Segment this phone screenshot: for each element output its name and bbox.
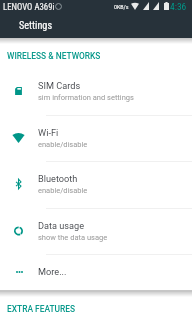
staticText: show the data usage bbox=[38, 233, 108, 242]
button[interactable]: More... bbox=[0, 254, 192, 290]
staticText: LENOVO A369i bbox=[3, 2, 55, 12]
staticText: Wi-Fi bbox=[38, 127, 59, 138]
staticText: sim information and settings bbox=[38, 93, 134, 102]
staticText: enable/disable bbox=[38, 140, 88, 149]
staticText: EXTRA FEATURES bbox=[7, 304, 76, 314]
button[interactable]: Data usage bbox=[0, 208, 192, 255]
staticText: More... bbox=[38, 266, 67, 277]
staticText: Data usage bbox=[38, 220, 85, 231]
staticText: Bluetooth bbox=[38, 173, 78, 184]
button[interactable]: Bluetooth bbox=[0, 161, 192, 208]
staticText: SIM Cards bbox=[38, 80, 81, 91]
other: SIM Cards bbox=[11, 81, 26, 101]
button[interactable]: SIM Cards bbox=[0, 68, 192, 115]
staticText: 0KB/s bbox=[114, 3, 129, 10]
staticText: enable/disable bbox=[38, 186, 88, 195]
button[interactable]: Wi-Fi bbox=[0, 115, 192, 162]
staticText: 4:36 bbox=[170, 1, 187, 12]
staticText: WIRELESS & NETWORKS bbox=[7, 51, 101, 61]
staticText: Settings bbox=[19, 20, 53, 32]
